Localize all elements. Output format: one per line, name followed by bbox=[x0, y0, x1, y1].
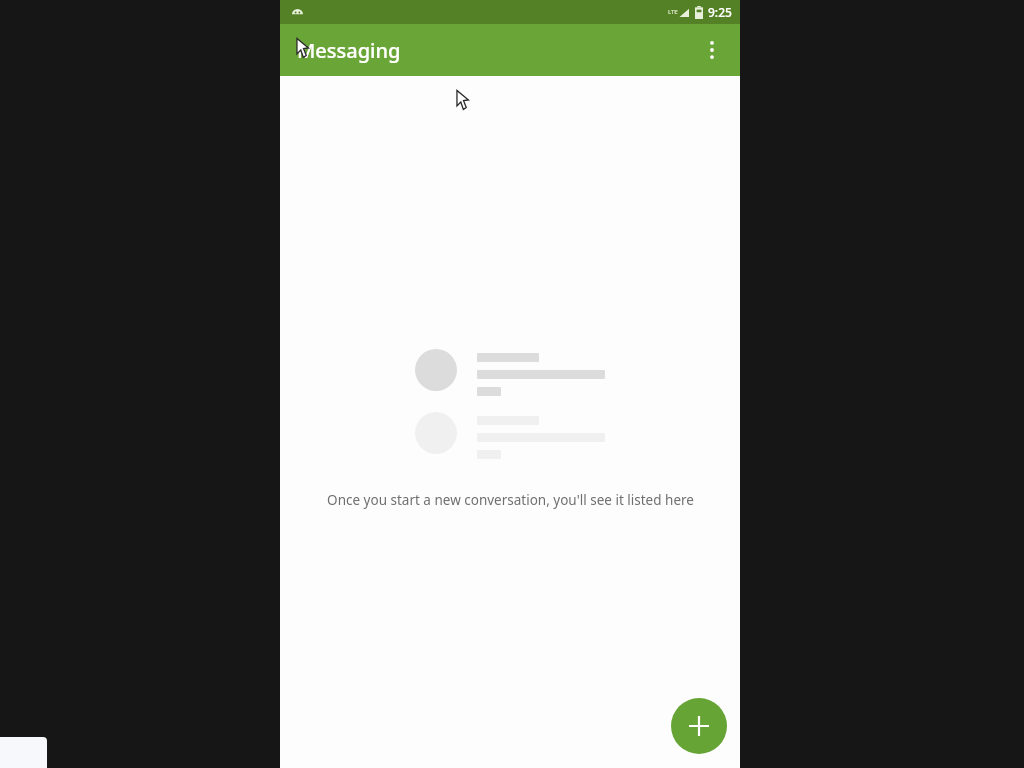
button[interactable]: More options bbox=[692, 30, 732, 70]
staticText: LTE bbox=[668, 8, 678, 16]
staticText: Once you start a new conversation, you'l… bbox=[327, 491, 694, 509]
staticText: 9:25 bbox=[708, 4, 732, 20]
staticText: Messaging bbox=[297, 37, 401, 64]
button[interactable]: Start new conversation bbox=[671, 698, 727, 754]
